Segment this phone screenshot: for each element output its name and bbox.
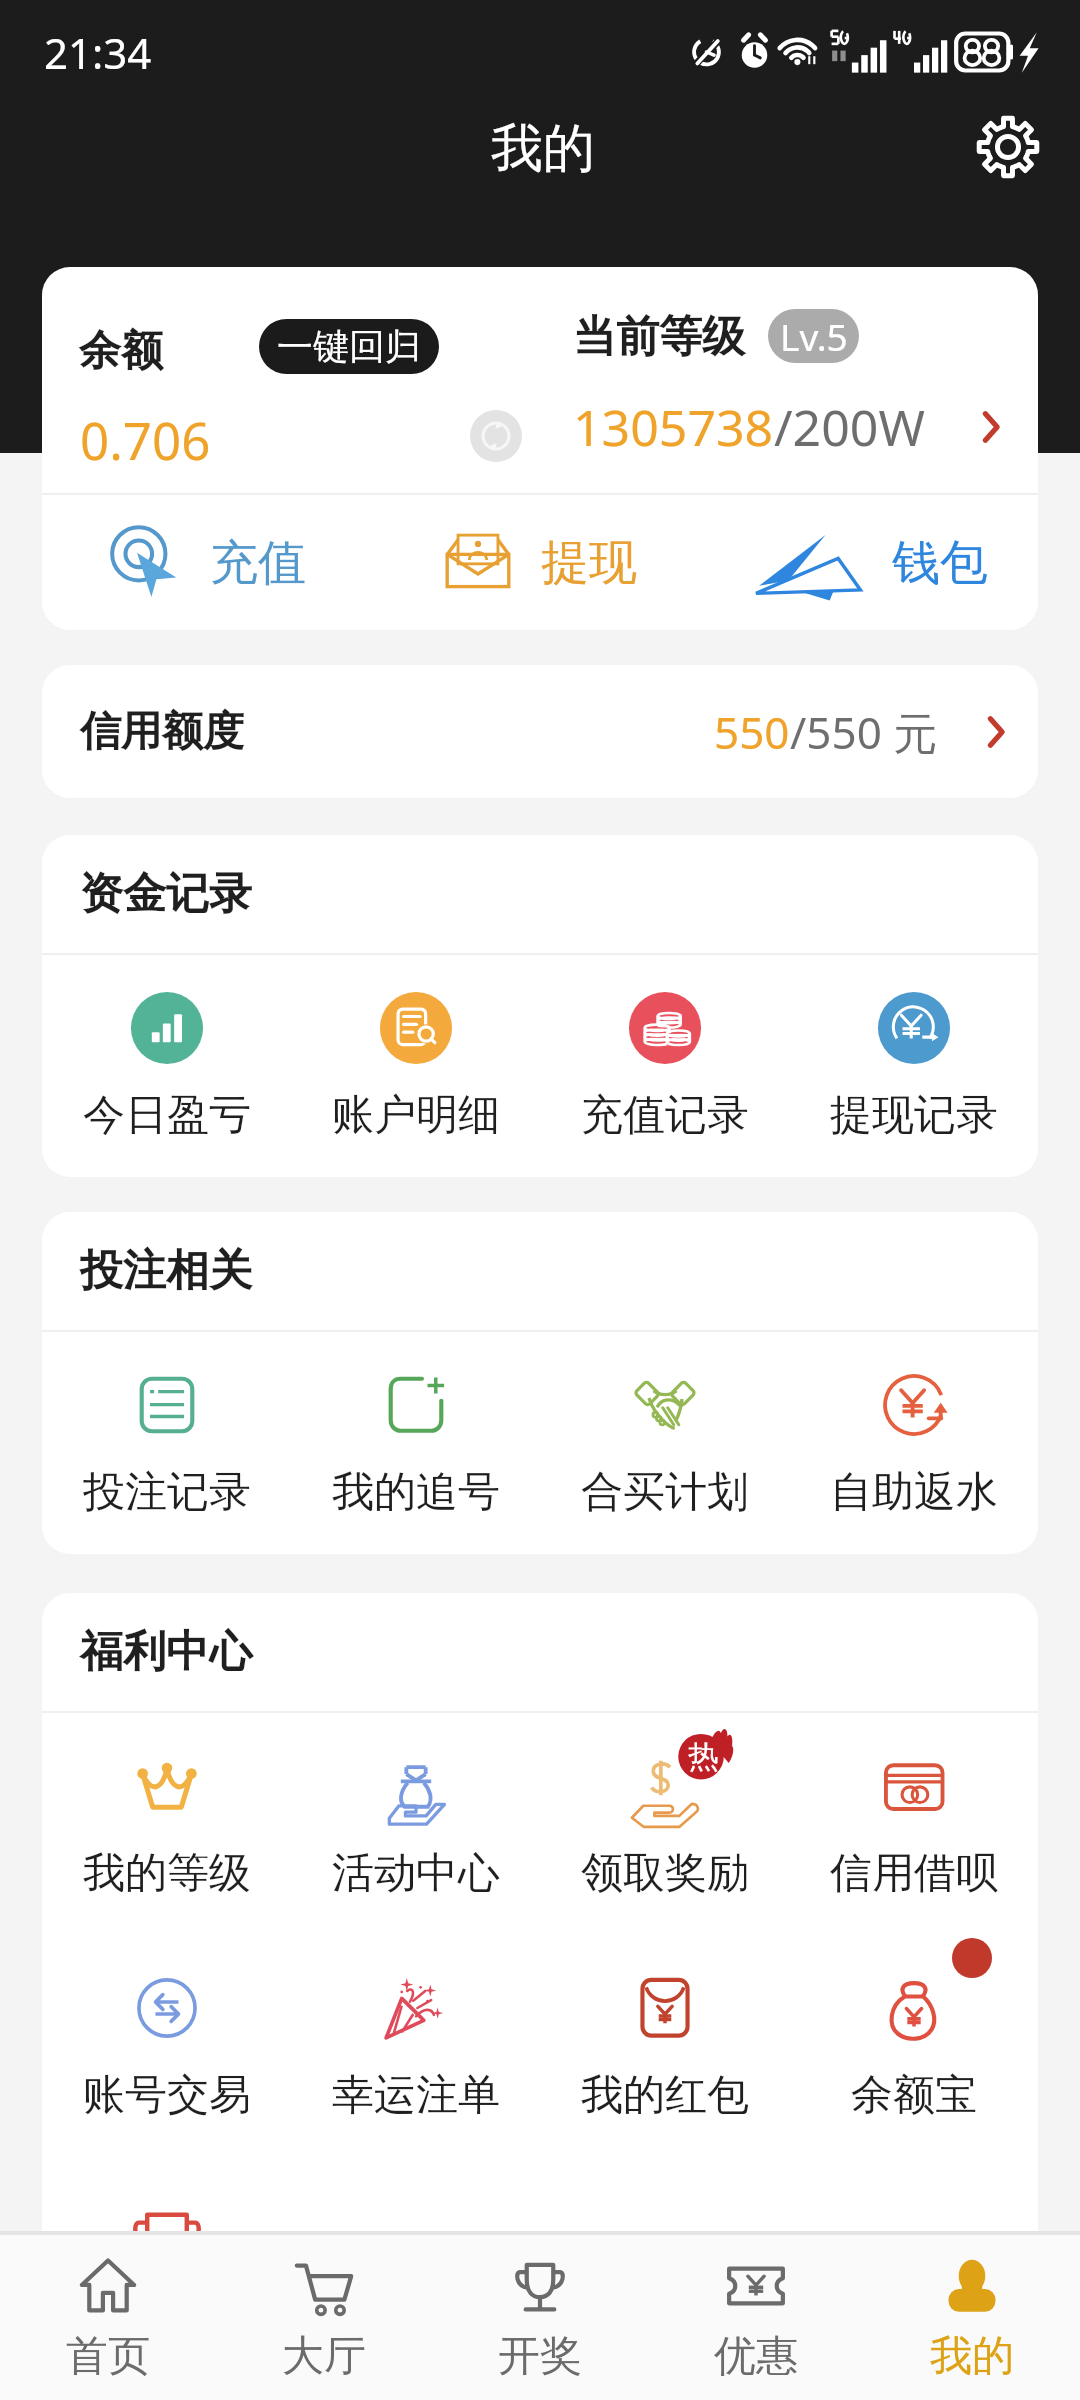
staticText: 1305738 [573,393,774,461]
button[interactable]: 信用借呗 [789,1713,1038,1935]
button[interactable]: 合买计划 [540,1332,789,1554]
button[interactable]: 账户明细 [291,955,540,1177]
staticText: 合买计划 [581,1466,749,1519]
staticText: 提现记录 [830,1089,998,1142]
button[interactable]: 活动中心 [291,1713,540,1935]
staticText: 投注记录 [83,1466,251,1519]
staticText: 客服中心 [83,2291,251,2344]
staticText: 活动中心 [332,1847,500,1900]
staticText: 领取奖励 [581,1847,749,1900]
staticText: /200W [774,393,925,461]
staticText: 信用借呗 [830,1847,998,1900]
staticText: 账户明细 [332,1089,500,1142]
staticText: 开奖 [498,2330,582,2383]
staticText: 自助返水 [830,1466,998,1519]
staticText: 首页 [66,2330,150,2383]
staticText: 优惠 [714,2330,798,2383]
button[interactable]: 今日盈亏 [42,955,291,1177]
button[interactable]: 钱包 [706,495,1038,630]
staticText: 我的红包 [581,2069,749,2122]
button[interactable]: 提现记录 [789,955,1038,1177]
button[interactable]: 提现 [374,495,706,630]
button[interactable]: 我的红包 [540,1935,789,2157]
button[interactable]: 信用额度 [42,665,1038,798]
button[interactable]: 余额宝 [789,1935,1038,2157]
staticText: 一键回归 [277,324,421,369]
button[interactable]: 一键回归 [259,319,439,374]
button[interactable]: 幸运注单 [291,1935,540,2157]
staticText: 550 [714,702,790,762]
staticText: 我的 [491,116,595,182]
staticText: 余额宝 [851,2069,977,2122]
button[interactable]: 充值记录 [540,955,789,1177]
staticText: 投注相关 [80,1244,252,1298]
staticText: 幸运注单 [332,2069,500,2122]
staticText: 热 [688,1737,719,1776]
staticText: 充值 [210,533,306,593]
staticText: 0.706 [80,405,211,474]
staticText: Lv.5 [780,311,848,361]
button[interactable]: Settings [962,101,1054,193]
staticText: 余额 [79,325,163,378]
staticText: 大厅 [282,2330,366,2383]
button[interactable]: 投注记录 [42,1332,291,1554]
button[interactable]: 自助返水 [789,1332,1038,1554]
button[interactable]: 我的追号 [291,1332,540,1554]
staticText: 当前等级 [573,310,745,364]
staticText: 我的等级 [83,1847,251,1900]
staticText: 账号交易 [83,2069,251,2122]
button[interactable]: 开奖 [432,2235,648,2400]
staticText: 提现 [541,533,637,593]
button[interactable]: 我的等级 [42,1713,291,1935]
button[interactable]: 账号交易 [42,1935,291,2157]
button[interactable]: 我的 [864,2235,1080,2400]
button[interactable]: 热 [540,1713,789,1935]
staticText: 今日盈亏 [83,1089,251,1142]
button[interactable]: 大厅 [216,2235,432,2400]
staticText: 充值记录 [581,1089,749,1142]
staticText: 资金记录 [80,867,252,921]
staticText: /550 元 [790,702,938,762]
staticText: 钱包 [892,533,988,593]
button[interactable]: Refresh [470,410,522,462]
staticText: 我的追号 [332,1466,500,1519]
button[interactable]: 充值 [42,495,374,630]
staticText: 我的 [930,2330,1014,2383]
staticText: 21:34 [44,24,152,81]
staticText: 福利中心 [80,1625,252,1679]
button[interactable]: 首页 [0,2235,216,2400]
staticText: 信用额度 [80,706,244,758]
button[interactable]: 客服中心 [42,2157,291,2379]
button[interactable]: 优惠 [648,2235,864,2400]
